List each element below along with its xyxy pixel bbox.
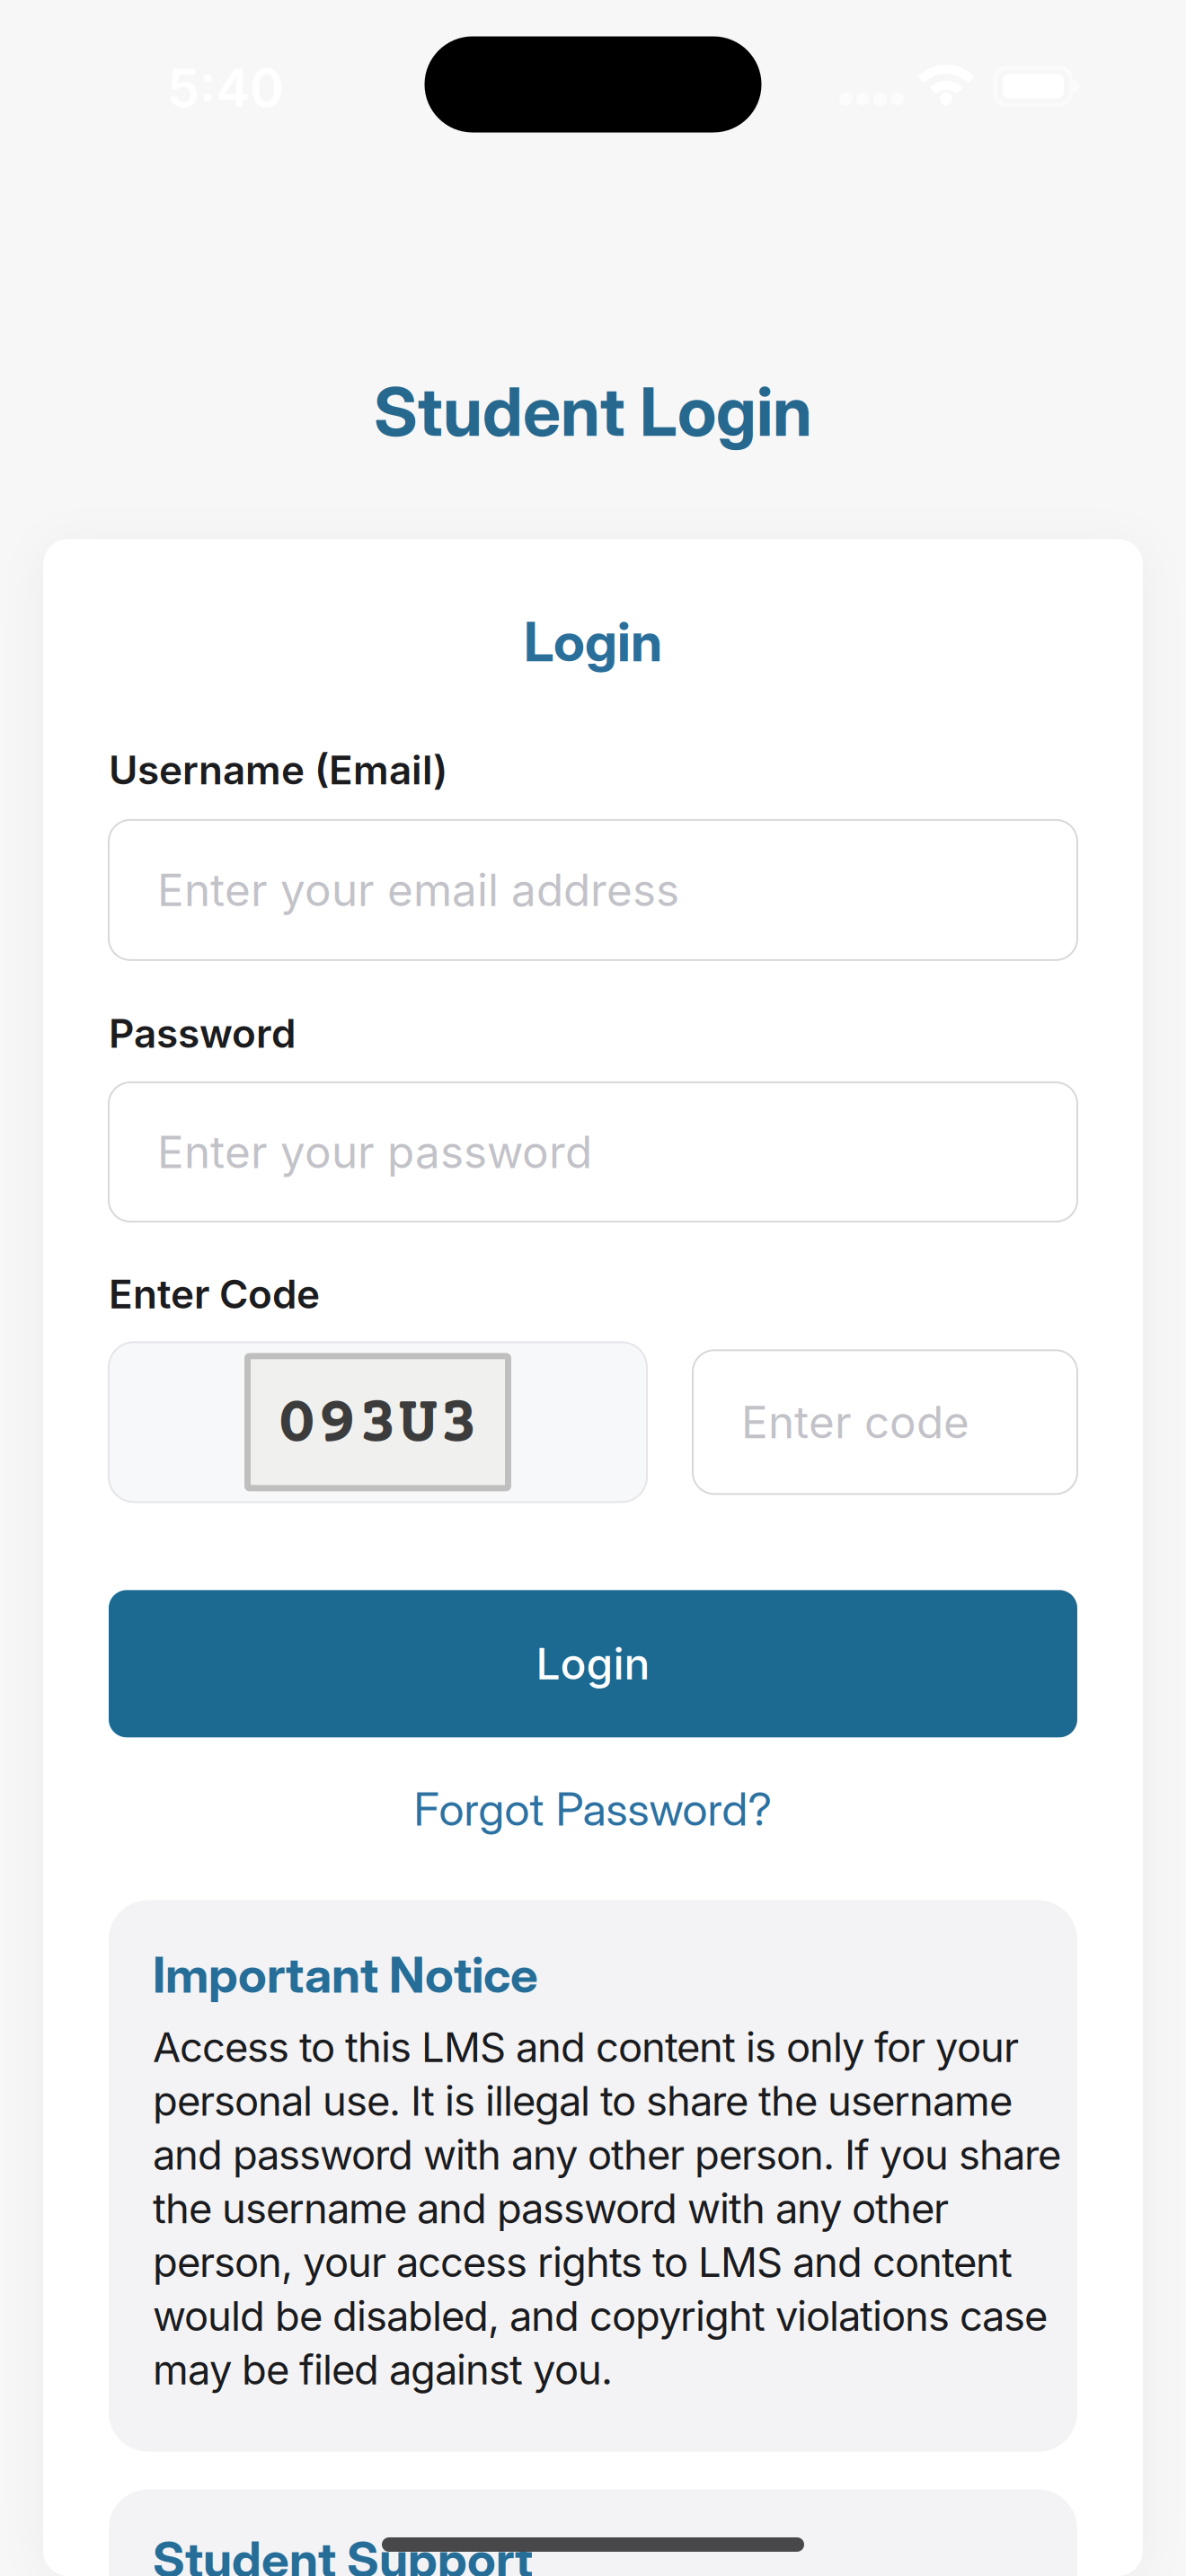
staticText: Password bbox=[109, 1009, 296, 1057]
staticText: Login bbox=[524, 609, 662, 674]
staticText: Enter your email address bbox=[157, 863, 679, 917]
button[interactable]: Forgot Password? bbox=[414, 1781, 772, 1836]
staticText: Enter your password bbox=[157, 1125, 592, 1179]
staticText: 5:40 bbox=[167, 57, 284, 119]
staticText: Enter code bbox=[741, 1395, 969, 1449]
button[interactable]: Login bbox=[109, 1590, 1077, 1737]
staticText: Access to this LMS and content is only f… bbox=[153, 2023, 1061, 2394]
staticText: 093U3 bbox=[277, 1388, 479, 1463]
staticText: Student Login bbox=[374, 371, 812, 452]
staticText: Username (Email) bbox=[109, 746, 447, 794]
staticText: Student Support bbox=[153, 2530, 533, 2576]
staticText: Login bbox=[536, 1638, 650, 1690]
staticText: Important Notice bbox=[153, 1945, 538, 2004]
button[interactable]: Enter your email address bbox=[109, 820, 1077, 960]
staticText: Forgot Password? bbox=[414, 1781, 772, 1836]
staticText: Enter Code bbox=[109, 1270, 320, 1318]
button[interactable]: Enter your password bbox=[109, 1082, 1077, 1222]
button[interactable]: Enter code bbox=[693, 1350, 1077, 1494]
